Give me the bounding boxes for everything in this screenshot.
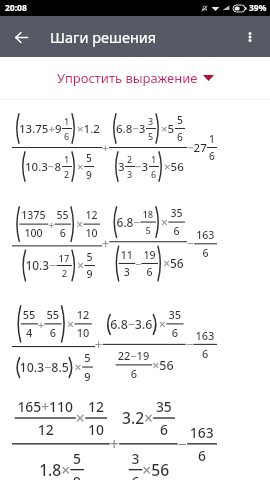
staticText: + <box>102 140 109 156</box>
staticText: 3 <box>131 449 140 468</box>
staticText: 163 <box>190 423 214 442</box>
staticText: 5 <box>86 249 93 264</box>
staticText: 6 <box>131 366 137 382</box>
staticText: 6 <box>177 130 183 144</box>
staticText: 18 <box>142 208 154 220</box>
staticText: 3.2× <box>122 408 153 430</box>
staticText: 6 <box>131 472 140 480</box>
staticText: 3 <box>124 265 130 279</box>
staticText: 1 <box>64 115 70 127</box>
staticText: 10.3−8 <box>25 159 62 175</box>
staticText: 9 <box>86 267 93 282</box>
staticText: 6 <box>64 130 70 142</box>
staticText: 12 <box>85 208 98 223</box>
staticText: 5 <box>73 449 81 468</box>
staticText: 1375 <box>21 208 46 223</box>
staticText: ×5 <box>161 121 175 137</box>
staticText: 17 <box>59 252 70 264</box>
staticText: − <box>187 236 194 253</box>
staticText: 9 <box>84 369 91 384</box>
staticText: 10 <box>85 226 98 240</box>
staticText: 35 <box>168 307 181 322</box>
staticText: 163 <box>195 328 215 343</box>
staticText: 5 <box>148 130 154 142</box>
staticText: × <box>76 216 83 233</box>
staticText: × <box>75 359 82 376</box>
staticText: 163 <box>196 228 215 242</box>
staticText: 9 <box>86 168 92 182</box>
staticText: 1 <box>209 132 215 146</box>
staticText: −3 <box>135 159 149 175</box>
staticText: 5 <box>84 350 91 365</box>
staticText: × <box>67 316 75 333</box>
staticText: 12 <box>77 307 90 322</box>
staticText: 1 <box>64 153 70 165</box>
staticText: 6 <box>202 346 208 361</box>
staticText: 165+110 <box>17 397 73 416</box>
staticText: 6 <box>173 224 180 238</box>
staticText: 3 <box>118 159 125 175</box>
staticText: 39% <box>249 2 267 14</box>
staticText: 4 <box>26 325 32 341</box>
staticText: 6 <box>60 226 66 240</box>
staticText: 2 <box>127 153 133 165</box>
staticText: 3 <box>127 168 133 180</box>
staticText: 35 <box>170 206 183 220</box>
staticText: ×56 <box>163 256 184 272</box>
staticText: 10.3− <box>25 258 57 274</box>
staticText: 6 <box>198 446 206 465</box>
staticText: × <box>159 316 166 333</box>
staticText: 2 <box>64 168 70 180</box>
staticText: Упростить выражение <box>57 69 198 87</box>
staticText: 6 <box>160 420 168 439</box>
staticText: ×1.2 <box>77 121 100 137</box>
staticText: 9 <box>73 472 81 480</box>
staticText: 6 <box>151 168 157 180</box>
staticText: − <box>186 336 193 354</box>
staticText: Шаги решения <box>50 27 157 47</box>
staticText: 5 <box>146 224 152 236</box>
staticText: −27 <box>187 140 207 156</box>
staticText: + <box>95 336 103 354</box>
staticText: + <box>102 236 109 253</box>
staticText: 6.8− <box>117 214 140 231</box>
staticText: 6 <box>209 149 215 163</box>
button[interactable]: More options <box>232 19 268 55</box>
staticText: ×56 <box>152 357 174 374</box>
staticText: ×56 <box>142 459 169 480</box>
staticText: 6 <box>202 245 209 260</box>
staticText: 6 <box>147 265 153 279</box>
staticText: 12 <box>38 420 54 439</box>
staticText: 6.8−3.6 <box>110 316 153 333</box>
staticText: 2 <box>62 267 68 279</box>
staticText: 13.75+9 <box>19 121 62 137</box>
staticText: 100 <box>24 226 43 240</box>
button[interactable]: Упростить выражение <box>49 63 222 93</box>
staticText: × <box>77 258 84 274</box>
staticText: − <box>135 257 141 271</box>
staticText: 35 <box>156 397 172 416</box>
staticText: 5 <box>86 151 92 165</box>
staticText: 55 <box>23 307 36 322</box>
staticText: 55 <box>46 307 59 322</box>
staticText: 6.8−3 <box>116 121 146 137</box>
staticText: 20:08 <box>5 2 27 14</box>
staticText: 6 <box>172 325 178 341</box>
staticText: ×56 <box>164 159 184 175</box>
staticText: 10.3−8.5 <box>20 359 69 376</box>
staticText: − <box>178 434 187 455</box>
staticText: 19 <box>143 247 156 262</box>
staticText: 6 <box>50 325 56 341</box>
staticText: 5 <box>177 113 183 127</box>
staticText: + <box>48 217 54 232</box>
staticText: 11 <box>121 247 133 262</box>
staticText: + <box>38 317 44 332</box>
staticText: 10 <box>88 420 104 439</box>
staticText: 55 <box>56 208 69 223</box>
staticText: 22−19 <box>118 348 150 363</box>
staticText: + <box>110 434 119 455</box>
staticText: × <box>76 408 85 430</box>
button[interactable]: Back <box>3 19 39 55</box>
staticText: × <box>77 159 84 175</box>
staticText: × <box>161 214 168 231</box>
